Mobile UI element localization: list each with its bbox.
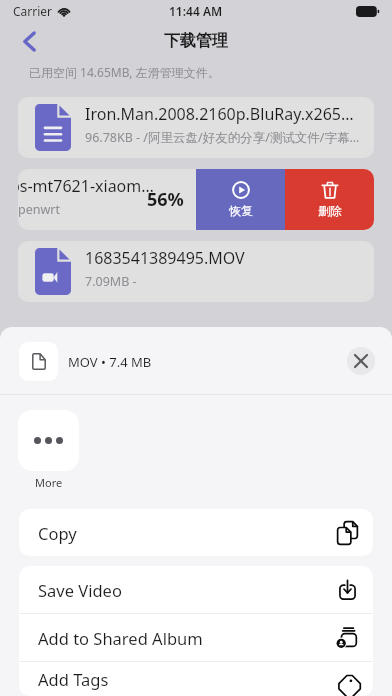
staticText: Copy xyxy=(38,522,77,544)
button[interactable]: 1683541389495.MOV xyxy=(18,241,374,302)
staticText: Iron.Man.2008.2160p.BluRay.x265… xyxy=(85,103,354,125)
button[interactable]: Add to Shared Album xyxy=(19,614,373,661)
button[interactable]: More xyxy=(18,410,79,471)
staticText: 删除 xyxy=(318,203,342,218)
button[interactable]: Save Video xyxy=(19,566,373,613)
staticText: Add Tags xyxy=(38,668,109,690)
staticText: 恢复 xyxy=(229,203,253,218)
button[interactable]: Copy xyxy=(19,509,373,556)
staticText: 1683541389495.MOV xyxy=(85,247,245,269)
button[interactable]: Iron.Man.2008.2160p.BluRay.x265… xyxy=(18,97,374,158)
button[interactable]: Back xyxy=(11,23,47,59)
staticText: Carrier xyxy=(13,3,53,19)
staticText: openwrt-ramips-mt7621-xiaom… xyxy=(18,175,154,197)
staticText: MOV • 7.4 MB xyxy=(68,353,152,371)
staticText: Add to Shared Album xyxy=(38,627,203,649)
staticText: 7.09MB - xyxy=(85,273,140,290)
button[interactable]: 恢复 xyxy=(196,169,285,230)
staticText: 96.78KB - /阿里云盘/好友的分享/测试文件/字幕… xyxy=(85,129,360,146)
staticText: 已用空间 14.65MB, 左滑管理文件。 xyxy=(29,64,220,80)
staticText: Save Video xyxy=(38,579,122,601)
staticText: 56% xyxy=(147,187,184,212)
button[interactable]: Close xyxy=(347,347,375,375)
button[interactable]: 删除 xyxy=(285,169,374,230)
button[interactable]: openwrt-ramips-mt7621-xiaom… xyxy=(18,169,374,230)
button[interactable]: Add Tags xyxy=(19,662,373,696)
staticText: 下载管理 xyxy=(164,31,228,51)
staticText: More xyxy=(35,475,63,490)
staticText: 11:44 AM xyxy=(169,3,223,19)
staticText: 9.81MB - /sdcard/openwrt xyxy=(18,201,60,218)
